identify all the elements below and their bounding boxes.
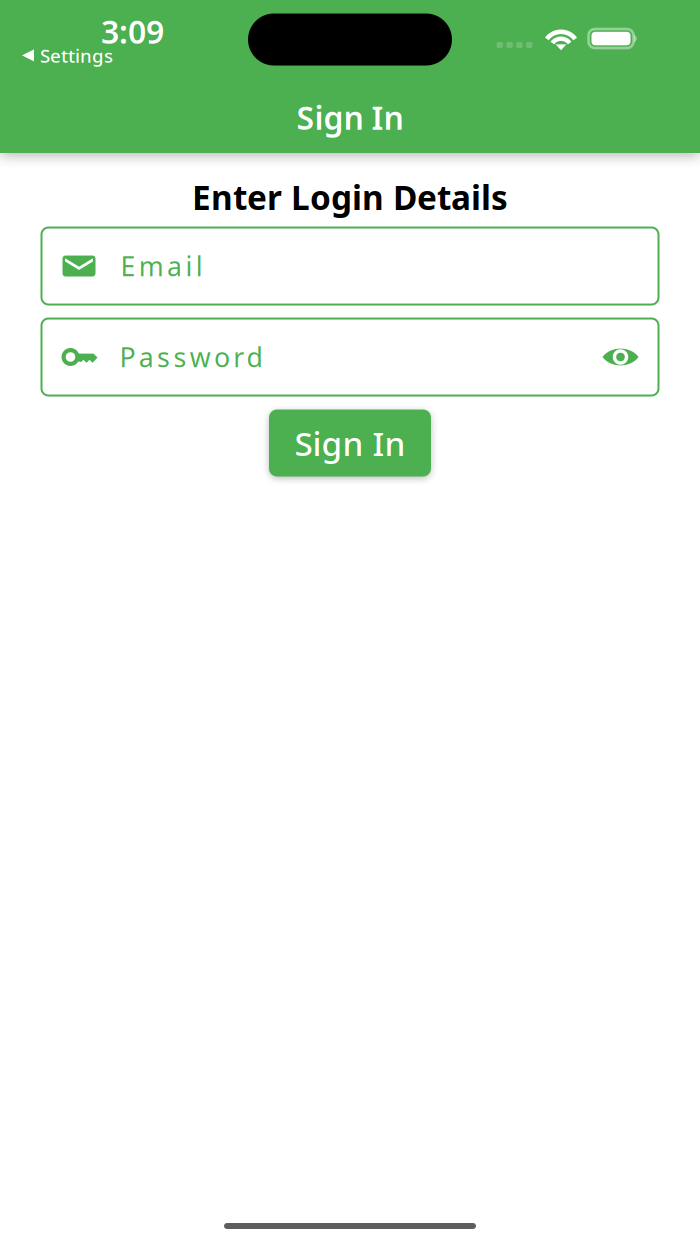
button[interactable]: Back to Settings [0, 43, 113, 68]
staticText: 3:09 [101, 10, 164, 52]
button[interactable]: Email [41, 227, 658, 304]
staticText: Password [119, 339, 263, 375]
staticText: Settings [40, 43, 113, 68]
staticText: Email [120, 248, 203, 284]
button[interactable]: Sign In [269, 409, 431, 476]
button[interactable]: Password [41, 318, 658, 395]
staticText: Enter Login Details [192, 175, 508, 219]
staticText: Sign In [296, 96, 403, 138]
staticText: Sign In [294, 421, 405, 465]
button[interactable]: Show password [602, 346, 658, 367]
